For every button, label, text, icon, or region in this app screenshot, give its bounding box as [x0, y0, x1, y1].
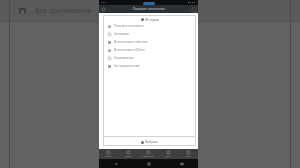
staticText: История: [145, 17, 159, 22]
staticText: Без уведомлений: [114, 64, 140, 68]
staticText: Лента: [105, 155, 112, 158]
button[interactable]: Избранное: [138, 149, 158, 159]
button[interactable]: Back: [99, 159, 132, 168]
staticText: Использовать DELete: [114, 48, 146, 52]
button[interactable]: Чаты: [178, 149, 198, 159]
staticText: Все: [166, 155, 170, 158]
staticText: Использовать события: [114, 40, 148, 44]
staticText: Избранное: [142, 155, 154, 158]
staticText: Чаты: [185, 155, 191, 158]
staticText: Показать системные: [133, 7, 165, 11]
button[interactable]: Выбрать: [141, 140, 159, 144]
button[interactable]: Без уведомлений: [104, 62, 195, 70]
button[interactable]: Recents: [165, 159, 198, 168]
staticText: Все приложения: [35, 6, 92, 16]
button[interactable]: Back: [101, 7, 106, 12]
button[interactable]: Заголовок: [104, 30, 195, 38]
button[interactable]: More options: [191, 7, 196, 12]
button[interactable]: Поиск: [118, 149, 138, 159]
staticText: Уведомления: [114, 56, 134, 60]
button[interactable]: Уведомления: [104, 54, 195, 62]
staticText: Заголовок: [114, 32, 130, 36]
staticText: Показать системные: [114, 24, 145, 28]
button[interactable]: Использовать события: [104, 38, 195, 46]
button[interactable]: Использовать DELete: [104, 46, 195, 54]
button[interactable]: Показать системные: [104, 22, 195, 30]
button[interactable]: Лента: [99, 149, 118, 159]
staticText: Поиск: [125, 155, 132, 158]
staticText: Выбрать: [145, 140, 159, 144]
button[interactable]: Все приложения: [19, 0, 92, 22]
button[interactable]: Home: [132, 159, 165, 168]
button[interactable]: Все: [158, 149, 178, 159]
